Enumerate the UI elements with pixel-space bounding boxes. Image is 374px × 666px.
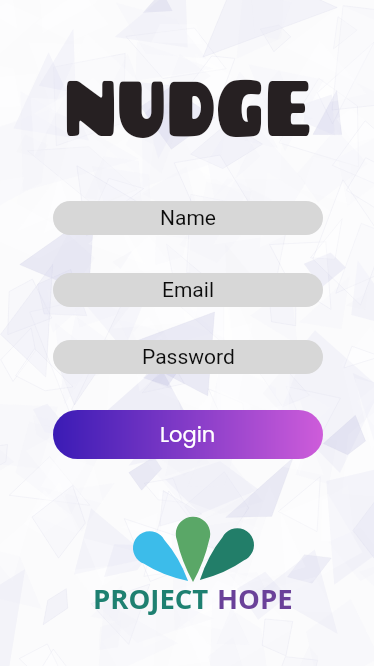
staticText: Email <box>162 278 214 303</box>
staticText: HOPE <box>217 580 293 617</box>
staticText: NUDGE <box>64 58 311 152</box>
button[interactable]: Project Hope <box>91 512 295 612</box>
staticText: Password <box>142 345 235 370</box>
staticText: PROJECT <box>93 580 209 617</box>
staticText: Name <box>160 206 216 231</box>
button[interactable]: Password <box>53 340 323 374</box>
button[interactable]: Email <box>53 273 323 307</box>
staticText: Login <box>160 420 216 449</box>
button[interactable]: Name <box>53 201 323 235</box>
button[interactable]: Login <box>53 410 323 459</box>
